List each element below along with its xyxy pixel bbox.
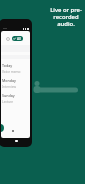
button[interactable]: Today — [1, 61, 30, 76]
staticText: Interview — [2, 85, 16, 89]
staticText: Monday — [2, 78, 16, 83]
staticText: Today — [2, 63, 13, 68]
staticText: All — [17, 36, 21, 41]
staticText: Lecture — [2, 100, 14, 104]
button[interactable]: New recording — [1, 124, 4, 132]
staticText: Voice memo — [2, 70, 21, 74]
button[interactable]: Sunday — [1, 91, 30, 106]
button[interactable]: Monday — [1, 76, 30, 91]
staticText: Live or pre- recorded audio. — [50, 6, 82, 28]
staticText: Sunday — [2, 93, 15, 98]
button[interactable]: All — [12, 36, 23, 41]
button[interactable]: Menu — [5, 36, 10, 41]
